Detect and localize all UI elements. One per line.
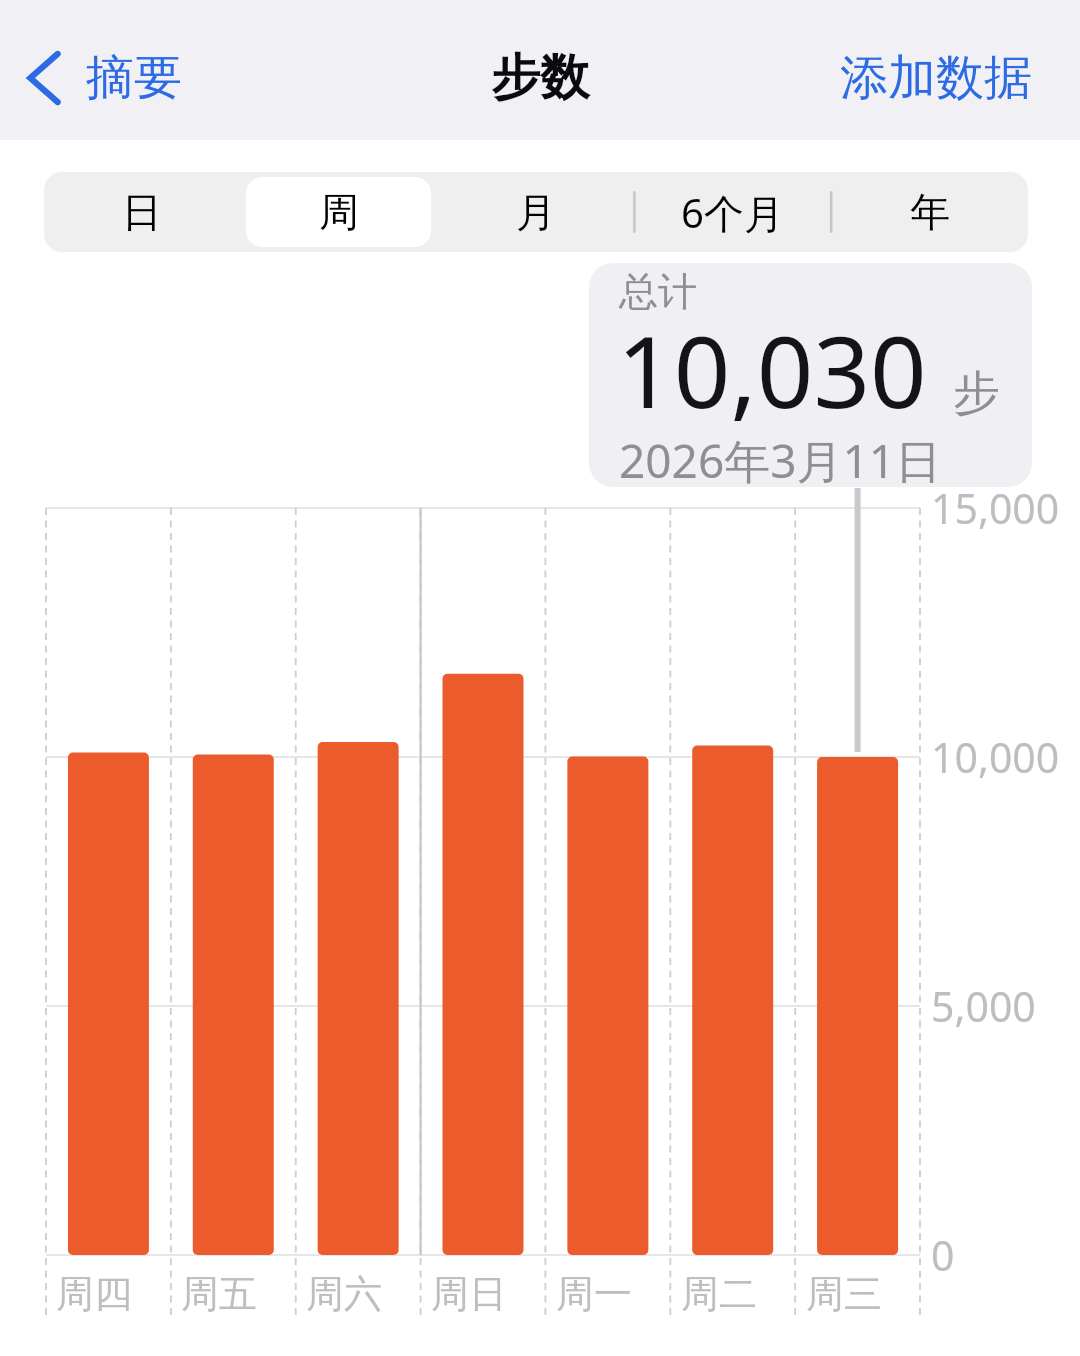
staticText: 周三 xyxy=(782,1270,906,1318)
button[interactable]: Back to Summary xyxy=(20,40,188,116)
staticText: 周二 xyxy=(657,1270,781,1318)
staticText: 6个月 xyxy=(681,185,784,240)
staticText: 周一 xyxy=(532,1270,656,1318)
staticText: 步 xyxy=(953,364,1000,423)
staticText: 周六 xyxy=(282,1270,406,1318)
button[interactable]: 月 xyxy=(437,172,634,252)
button[interactable]: 周 xyxy=(240,172,437,252)
staticText: 15,000 xyxy=(931,480,1060,536)
staticText: 总计 xyxy=(619,267,697,316)
staticText: 周日 xyxy=(407,1270,531,1318)
staticText: 5,000 xyxy=(931,978,1036,1034)
staticText: 步数 xyxy=(491,47,589,109)
staticText: 10,000 xyxy=(931,729,1060,785)
staticText: 0 xyxy=(931,1227,955,1283)
staticText: 周 xyxy=(319,187,359,237)
staticText: 摘要 xyxy=(86,48,182,108)
button[interactable]: 总计 xyxy=(589,263,1032,487)
button[interactable]: 年 xyxy=(831,172,1028,252)
button[interactable]: 添加数据 xyxy=(836,40,1036,116)
staticText: 周四 xyxy=(32,1270,156,1318)
staticText: 年 xyxy=(910,187,950,237)
staticText: 月 xyxy=(516,187,556,237)
staticText: 添加数据 xyxy=(840,48,1032,108)
button[interactable]: 6个月 xyxy=(634,172,831,252)
other: Back to Summary xyxy=(26,50,62,106)
staticText: 周五 xyxy=(157,1270,281,1318)
staticText: 2026年3月11日 xyxy=(619,429,942,487)
staticText: 10,030 xyxy=(617,302,927,437)
button[interactable]: 日 xyxy=(44,172,240,252)
staticText: 日 xyxy=(122,187,162,237)
